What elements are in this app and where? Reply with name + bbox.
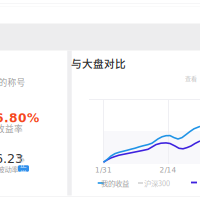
staticText: 6.23 bbox=[0, 151, 23, 166]
staticText: 查看 bbox=[185, 74, 197, 83]
staticText: 收益率 bbox=[0, 122, 23, 135]
staticText: 1/31 bbox=[95, 166, 112, 174]
staticText: 我的收益 bbox=[101, 178, 129, 188]
staticText: 波动率 bbox=[0, 164, 18, 174]
staticText: 沪深300 bbox=[144, 178, 170, 188]
staticText: 正常 bbox=[20, 159, 27, 178]
staticText: 6.80% bbox=[0, 111, 39, 125]
staticText: 的称号 bbox=[0, 76, 25, 88]
staticText: % bbox=[17, 155, 25, 164]
staticText: 2/14 bbox=[159, 166, 176, 174]
staticText: 与大盘对比 bbox=[71, 55, 126, 71]
